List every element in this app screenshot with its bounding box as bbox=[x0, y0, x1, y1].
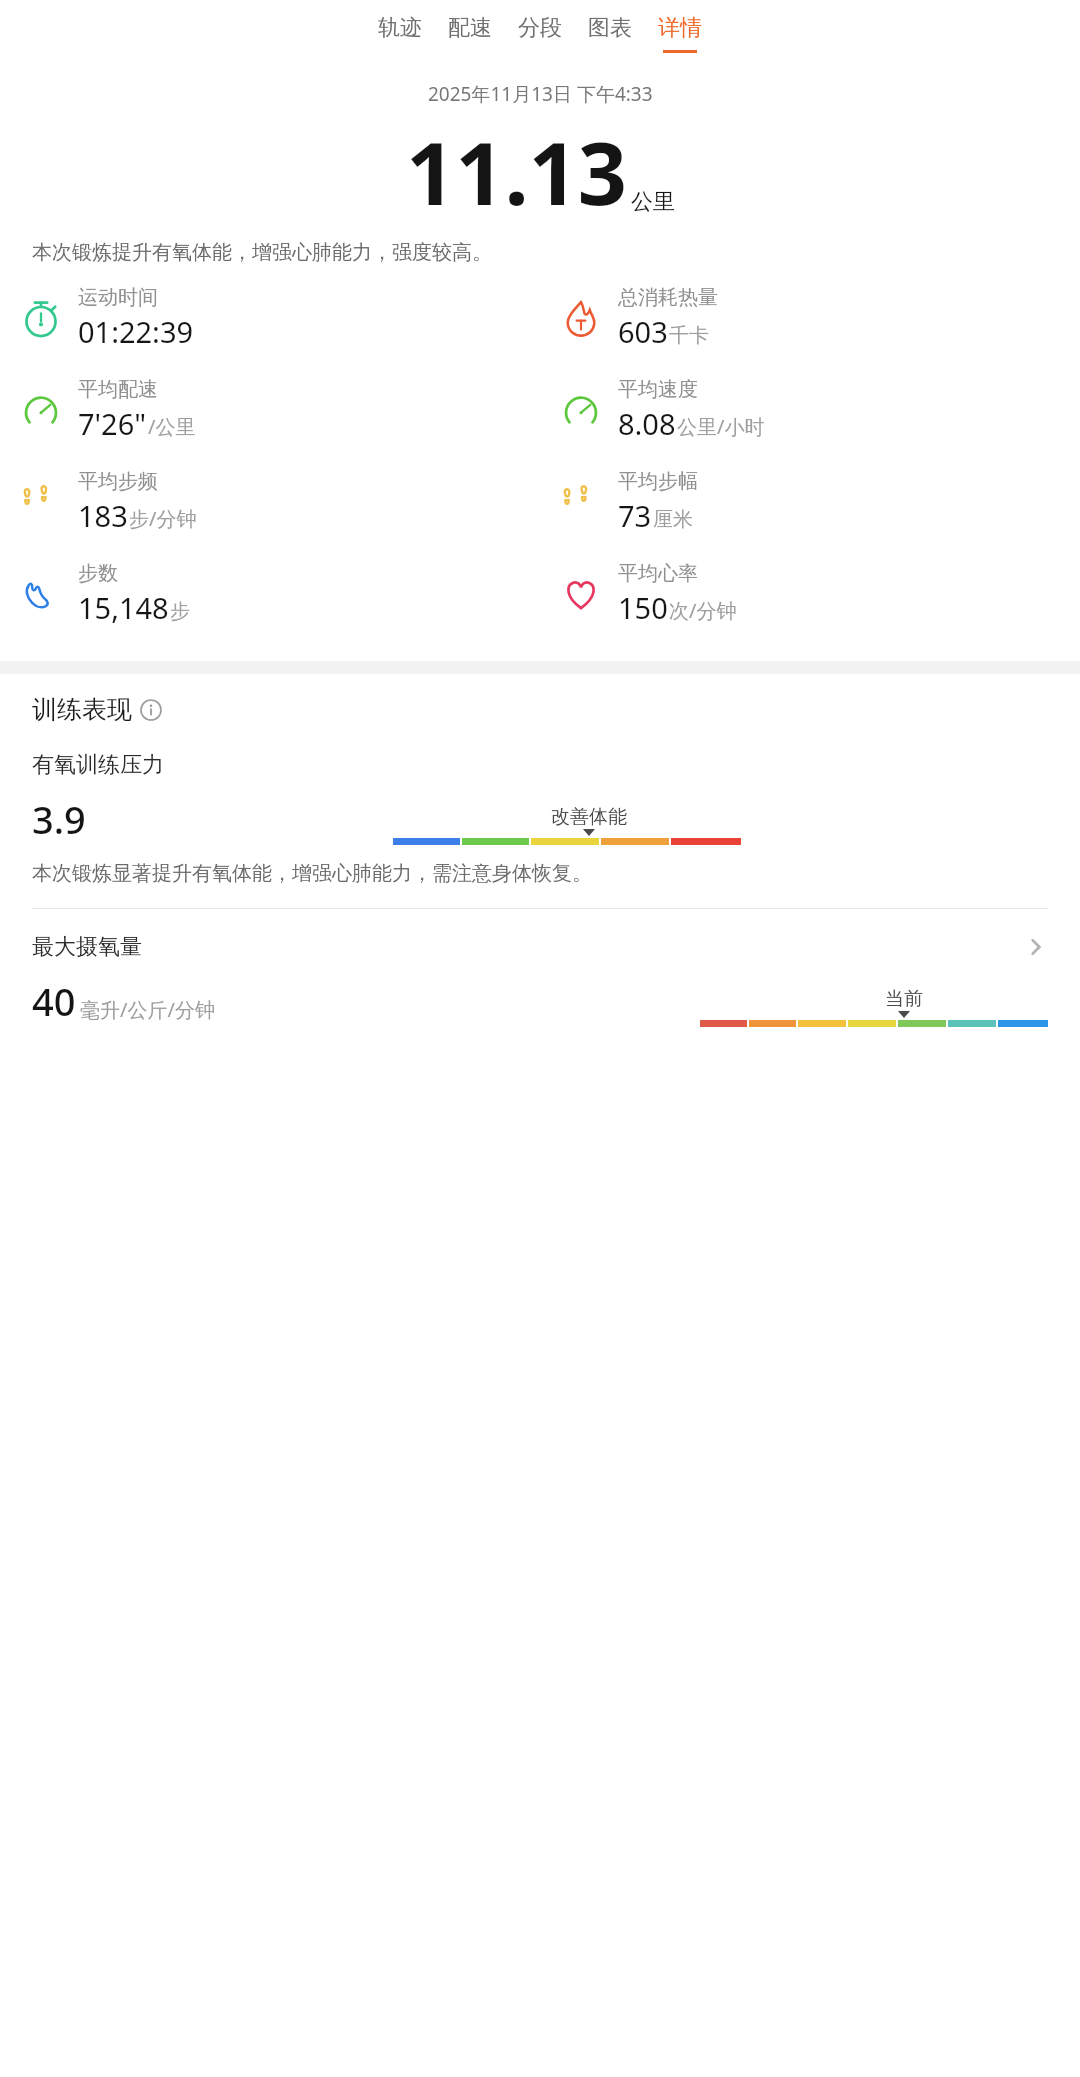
staticText: 40 bbox=[32, 975, 76, 1027]
staticText: 步数 bbox=[78, 561, 118, 586]
staticText: 公里 bbox=[631, 188, 675, 216]
staticText: 平均心率 bbox=[618, 561, 698, 586]
staticText: 最大摄氧量 bbox=[32, 933, 142, 961]
staticText: 配速 bbox=[448, 14, 492, 42]
button[interactable]: 平均步频 bbox=[0, 465, 540, 539]
staticText: 平均步频 bbox=[78, 469, 158, 494]
button[interactable]: 平均速度 bbox=[540, 373, 1080, 447]
other: 总消耗热量 bbox=[554, 291, 608, 345]
button[interactable]: 图表 bbox=[575, 8, 645, 59]
button[interactable]: 总消耗热量 bbox=[540, 281, 1080, 355]
button[interactable]: 运动时间 bbox=[0, 281, 540, 355]
other: 信息 bbox=[140, 699, 162, 721]
other: 平均速度 bbox=[554, 383, 608, 437]
button[interactable]: 步数 bbox=[0, 557, 540, 631]
staticText: 公里/小时 bbox=[677, 413, 765, 440]
staticText: 当前 bbox=[885, 987, 923, 1011]
other: 步数 bbox=[14, 567, 68, 621]
staticText: 次/分钟 bbox=[669, 597, 737, 624]
button[interactable]: 详情 bbox=[645, 8, 715, 59]
button[interactable]: 平均心率 bbox=[540, 557, 1080, 631]
staticText: 轨迹 bbox=[378, 14, 422, 42]
staticText: 步/分钟 bbox=[129, 505, 197, 532]
button[interactable]: 平均配速 bbox=[0, 373, 540, 447]
staticText: 毫升/公斤/分钟 bbox=[80, 996, 215, 1023]
button[interactable]: 平均步幅 bbox=[540, 465, 1080, 539]
staticText: 厘米 bbox=[653, 507, 693, 532]
staticText: 平均步幅 bbox=[618, 469, 698, 494]
staticText: 73 bbox=[618, 496, 652, 535]
button[interactable]: 训练表现 bbox=[32, 694, 162, 725]
staticText: 改善体能 bbox=[551, 805, 627, 829]
other: 平均心率 bbox=[554, 567, 608, 621]
staticText: 千卡 bbox=[669, 323, 709, 348]
staticText: /公里 bbox=[148, 413, 196, 440]
staticText: 603 bbox=[618, 312, 668, 351]
staticText: 11.13 bbox=[406, 113, 627, 230]
staticText: 8.08 bbox=[618, 404, 676, 443]
staticText: 训练表现 bbox=[32, 694, 132, 725]
staticText: 详情 bbox=[658, 14, 702, 42]
staticText: 平均配速 bbox=[78, 377, 158, 402]
staticText: 本次锻炼提升有氧体能，增强心肺能力，强度较高。 bbox=[32, 240, 1048, 265]
staticText: 运动时间 bbox=[78, 285, 158, 310]
staticText: 有氧训练压力 bbox=[32, 751, 164, 779]
staticText: 2025年11月13日 下午4:33 bbox=[428, 81, 653, 107]
staticText: 15,148 bbox=[78, 588, 169, 627]
button[interactable]: 最大摄氧量 bbox=[0, 933, 1080, 961]
other: 平均配速 bbox=[14, 383, 68, 437]
other: 平均步幅 bbox=[554, 475, 608, 529]
other: 查看详情 bbox=[1024, 935, 1048, 959]
staticText: 总消耗热量 bbox=[618, 285, 718, 310]
button[interactable]: 轨迹 bbox=[365, 8, 435, 59]
other: 平均步频 bbox=[14, 475, 68, 529]
staticText: 图表 bbox=[588, 14, 632, 42]
button[interactable]: 分段 bbox=[505, 8, 575, 59]
staticText: 3.9 bbox=[32, 793, 86, 845]
staticText: 分段 bbox=[518, 14, 562, 42]
staticText: 7'26" bbox=[78, 404, 147, 443]
staticText: 平均速度 bbox=[618, 377, 698, 402]
staticText: 步 bbox=[170, 599, 190, 624]
other: 运动时间 bbox=[14, 291, 68, 345]
staticText: 本次锻炼显著提升有氧体能，增强心肺能力，需注意身体恢复。 bbox=[32, 861, 1048, 886]
staticText: 183 bbox=[78, 496, 128, 535]
staticText: 150 bbox=[618, 588, 668, 627]
staticText: 01:22:39 bbox=[78, 312, 194, 351]
button[interactable]: 配速 bbox=[435, 8, 505, 59]
